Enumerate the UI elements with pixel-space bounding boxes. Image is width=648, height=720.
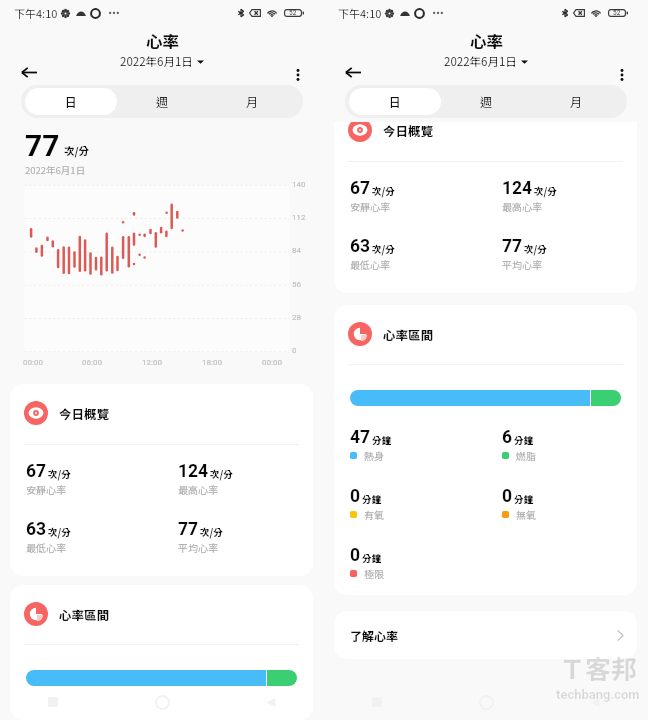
button[interactable]: 2022年6月1日 <box>444 53 528 70</box>
staticText: 燃脂 <box>516 448 536 462</box>
staticText: 00:00 <box>262 358 282 367</box>
staticText: 52 <box>289 9 297 17</box>
staticText: 次/分 <box>48 525 71 539</box>
staticText: 日 <box>389 93 402 110</box>
staticText: 00:00 <box>23 358 43 367</box>
staticText: 124 <box>502 178 533 199</box>
staticText: 次/分 <box>372 184 395 198</box>
staticText: 平均心率 <box>178 540 218 554</box>
staticText: 18:00 <box>202 358 222 367</box>
staticText: 124 <box>178 461 209 482</box>
button[interactable]: 日 <box>25 88 117 115</box>
staticText: 84 <box>292 246 301 255</box>
staticText: techbang.com <box>556 687 640 702</box>
staticText: 熱身 <box>364 448 384 462</box>
staticText: 63 <box>350 236 371 257</box>
staticText: 分鐘 <box>372 433 392 447</box>
staticText: 日 <box>65 93 78 110</box>
staticText: 2022年6月1日 <box>120 53 193 70</box>
staticText: 63 <box>26 519 47 540</box>
staticText: 次/分 <box>200 525 223 539</box>
staticText: 0 <box>350 545 361 566</box>
staticText: 0 <box>350 486 361 507</box>
staticText: 77 <box>502 236 523 257</box>
staticText: 最低心率 <box>26 540 66 554</box>
staticText: 下午4:10 <box>338 5 382 21</box>
staticText: 次/分 <box>48 467 71 481</box>
staticText: 52 <box>613 9 621 17</box>
button[interactable]: 2022年6月1日 <box>120 53 204 70</box>
staticText: 今日概覽 <box>59 404 110 422</box>
staticText: 了解心率 <box>350 627 399 644</box>
button[interactable]: Back <box>258 689 284 715</box>
button[interactable]: 了解心率 <box>334 611 637 659</box>
staticText: 67 <box>350 178 371 199</box>
staticText: 77 <box>178 519 199 540</box>
staticText: 今日概覽 <box>383 122 434 139</box>
button[interactable]: More options <box>282 59 314 91</box>
staticText: 12:00 <box>142 358 162 367</box>
staticText: 77 <box>25 128 60 163</box>
staticText: 最高心率 <box>502 199 542 213</box>
button[interactable]: Recents <box>40 689 66 715</box>
staticText: 47 <box>350 427 371 448</box>
staticText: 分鐘 <box>362 492 382 506</box>
button[interactable]: 月 <box>207 85 297 118</box>
staticText: 0 <box>502 486 513 507</box>
button[interactable]: 週 <box>441 85 531 118</box>
staticText: 6 <box>502 427 513 448</box>
button[interactable]: Back <box>582 689 608 715</box>
staticText: 分鐘 <box>514 433 534 447</box>
staticText: 次/分 <box>534 184 557 198</box>
staticText: 分鐘 <box>362 551 382 565</box>
staticText: 心率區間 <box>59 605 110 623</box>
button[interactable]: 週 <box>117 85 207 118</box>
staticText: 平均心率 <box>502 257 542 271</box>
staticText: 心率 <box>470 29 503 53</box>
staticText: 極限 <box>364 566 384 580</box>
staticText: 140 <box>292 180 306 189</box>
staticText: 無氧 <box>516 507 536 521</box>
staticText: 最低心率 <box>350 257 390 271</box>
staticText: 安靜心率 <box>26 482 66 496</box>
staticText: 0 <box>292 346 297 355</box>
staticText: 分鐘 <box>514 492 534 506</box>
staticText: 次/分 <box>524 242 547 256</box>
staticText: 月 <box>246 93 259 110</box>
staticText: 下午4:10 <box>14 5 58 21</box>
button[interactable]: Back <box>336 55 370 89</box>
staticText: 2022年6月1日 <box>444 53 517 70</box>
staticText: 67 <box>26 461 47 482</box>
staticText: 次/分 <box>372 242 395 256</box>
staticText: 06:00 <box>82 358 102 367</box>
staticText: 有氧 <box>364 507 384 521</box>
staticText: 28 <box>292 313 301 322</box>
staticText: 月 <box>570 93 583 110</box>
staticText: Ｔ客邦 <box>559 649 638 687</box>
button[interactable]: 月 <box>531 85 621 118</box>
staticText: 最高心率 <box>178 482 218 496</box>
button[interactable]: 日 <box>349 88 441 115</box>
staticText: 56 <box>292 280 301 289</box>
button[interactable]: Home <box>149 689 175 715</box>
staticText: 次/分 <box>210 467 233 481</box>
staticText: 心率區間 <box>383 325 434 343</box>
staticText: 週 <box>480 93 493 110</box>
staticText: 心率 <box>146 29 179 53</box>
button[interactable]: More options <box>606 59 638 91</box>
staticText: 週 <box>156 93 169 110</box>
staticText: 安靜心率 <box>350 199 390 213</box>
staticText: 次/分 <box>64 143 90 158</box>
staticText: 112 <box>292 213 306 222</box>
button[interactable]: Back <box>12 55 46 89</box>
staticText: 2022年6月1日 <box>25 163 86 177</box>
